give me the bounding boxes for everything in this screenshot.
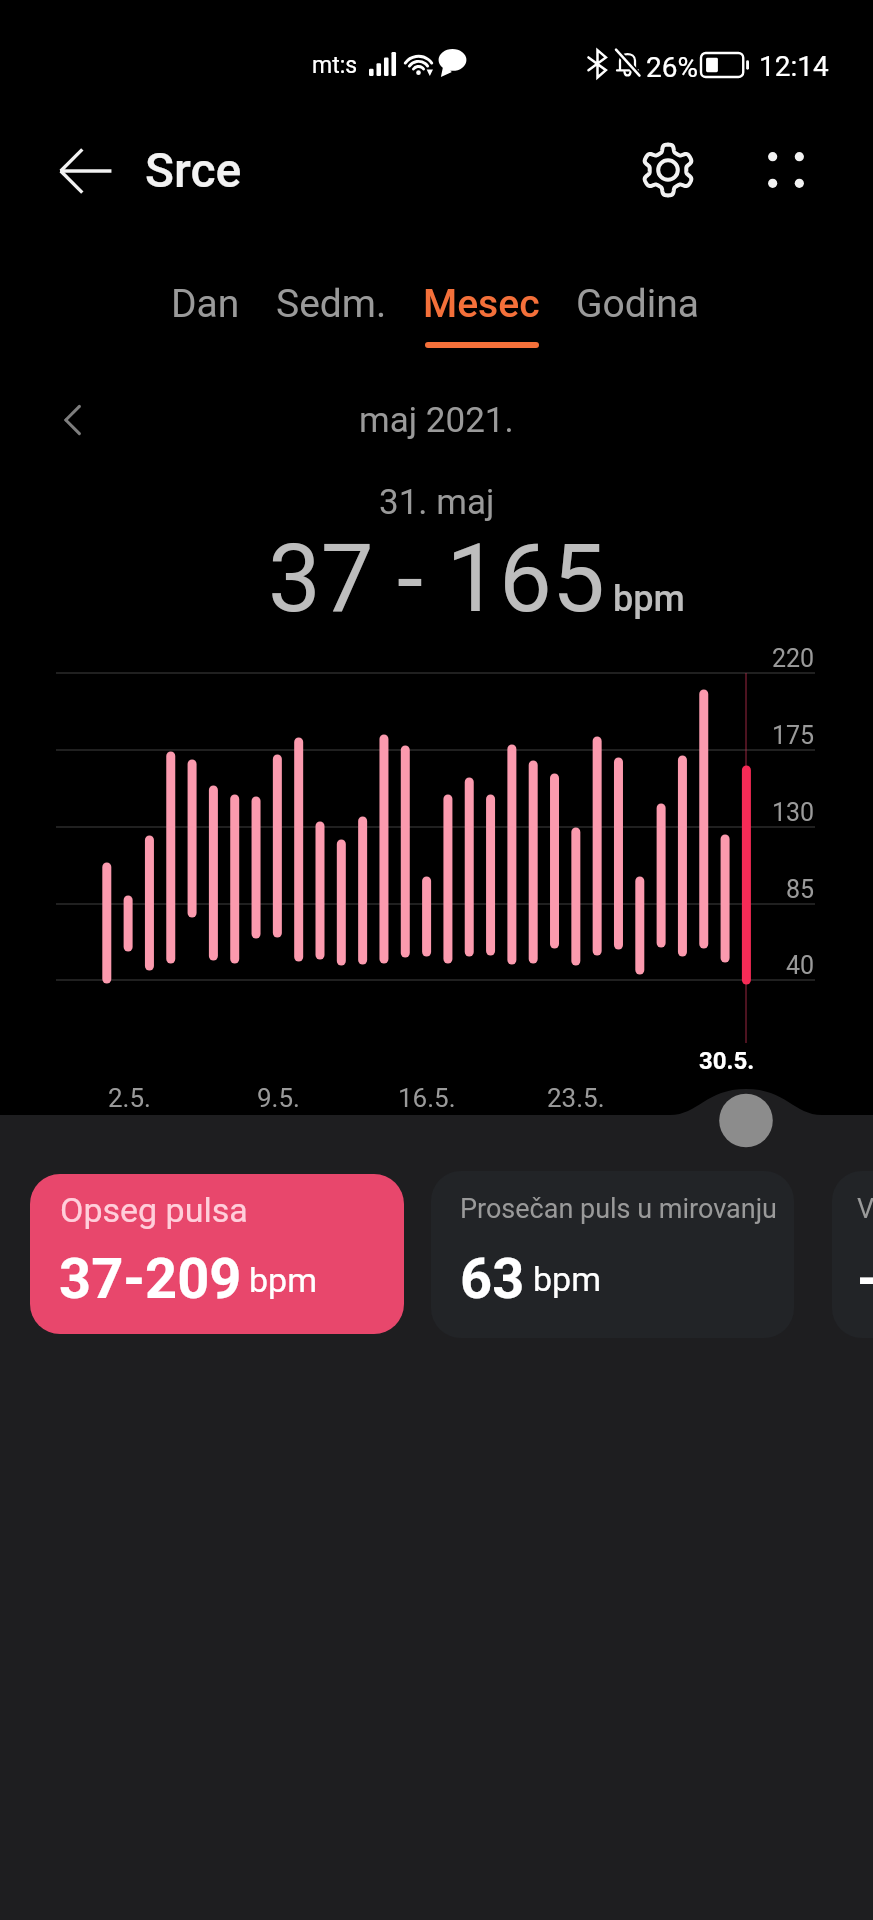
staticText: 2.5. — [108, 1083, 151, 1113]
staticText: bpm — [613, 578, 685, 620]
staticText: 37-209 — [59, 1246, 242, 1312]
staticText: 85 — [786, 875, 815, 904]
staticText: 31. maj — [379, 482, 495, 523]
button[interactable]: Mesec — [405, 281, 558, 348]
staticText: Varijabilnost pulsa — [857, 1193, 873, 1225]
staticText: 12:14 — [759, 50, 829, 83]
staticText: 175 — [772, 721, 815, 750]
staticText: Prosečan puls u mirovanju — [460, 1193, 777, 1225]
button[interactable]: Previous month — [38, 385, 108, 455]
staticText: 130 — [772, 798, 815, 827]
staticText: Srce — [145, 142, 242, 198]
staticText: 63 — [460, 1246, 525, 1312]
staticText: 37 - 165 — [268, 524, 605, 634]
staticText: bpm — [249, 1260, 317, 1300]
staticText: bpm — [533, 1259, 601, 1299]
staticText: Dan — [171, 281, 240, 327]
button[interactable]: Dan — [153, 281, 258, 348]
staticText: Sedm. — [276, 281, 387, 327]
button[interactable]: More options — [747, 131, 825, 209]
button[interactable]: Varijabilnost pulsa — [832, 1171, 873, 1338]
staticText: mt:s — [312, 52, 358, 79]
button[interactable]: Back — [46, 132, 124, 210]
staticText: 23.5. — [547, 1083, 605, 1113]
staticText: 9.5. — [257, 1083, 300, 1113]
staticText: maj 2021. — [359, 400, 514, 441]
button[interactable]: Prosečan puls u mirovanju — [431, 1171, 794, 1338]
staticText: Godina — [576, 281, 700, 327]
button[interactable]: Opseg pulsa — [30, 1174, 404, 1334]
staticText: 220 — [772, 644, 815, 673]
button[interactable]: Godina — [558, 281, 718, 348]
staticText: -- — [857, 1246, 873, 1312]
button[interactable]: Settings — [629, 131, 707, 209]
staticText: Opseg pulsa — [60, 1190, 248, 1230]
staticText: 30.5. — [699, 1047, 755, 1075]
staticText: 40 — [786, 951, 815, 980]
staticText: 26% — [646, 51, 698, 84]
staticText: Mesec — [423, 281, 540, 327]
staticText: 16.5. — [398, 1083, 456, 1113]
button[interactable]: Sedm. — [258, 281, 405, 348]
